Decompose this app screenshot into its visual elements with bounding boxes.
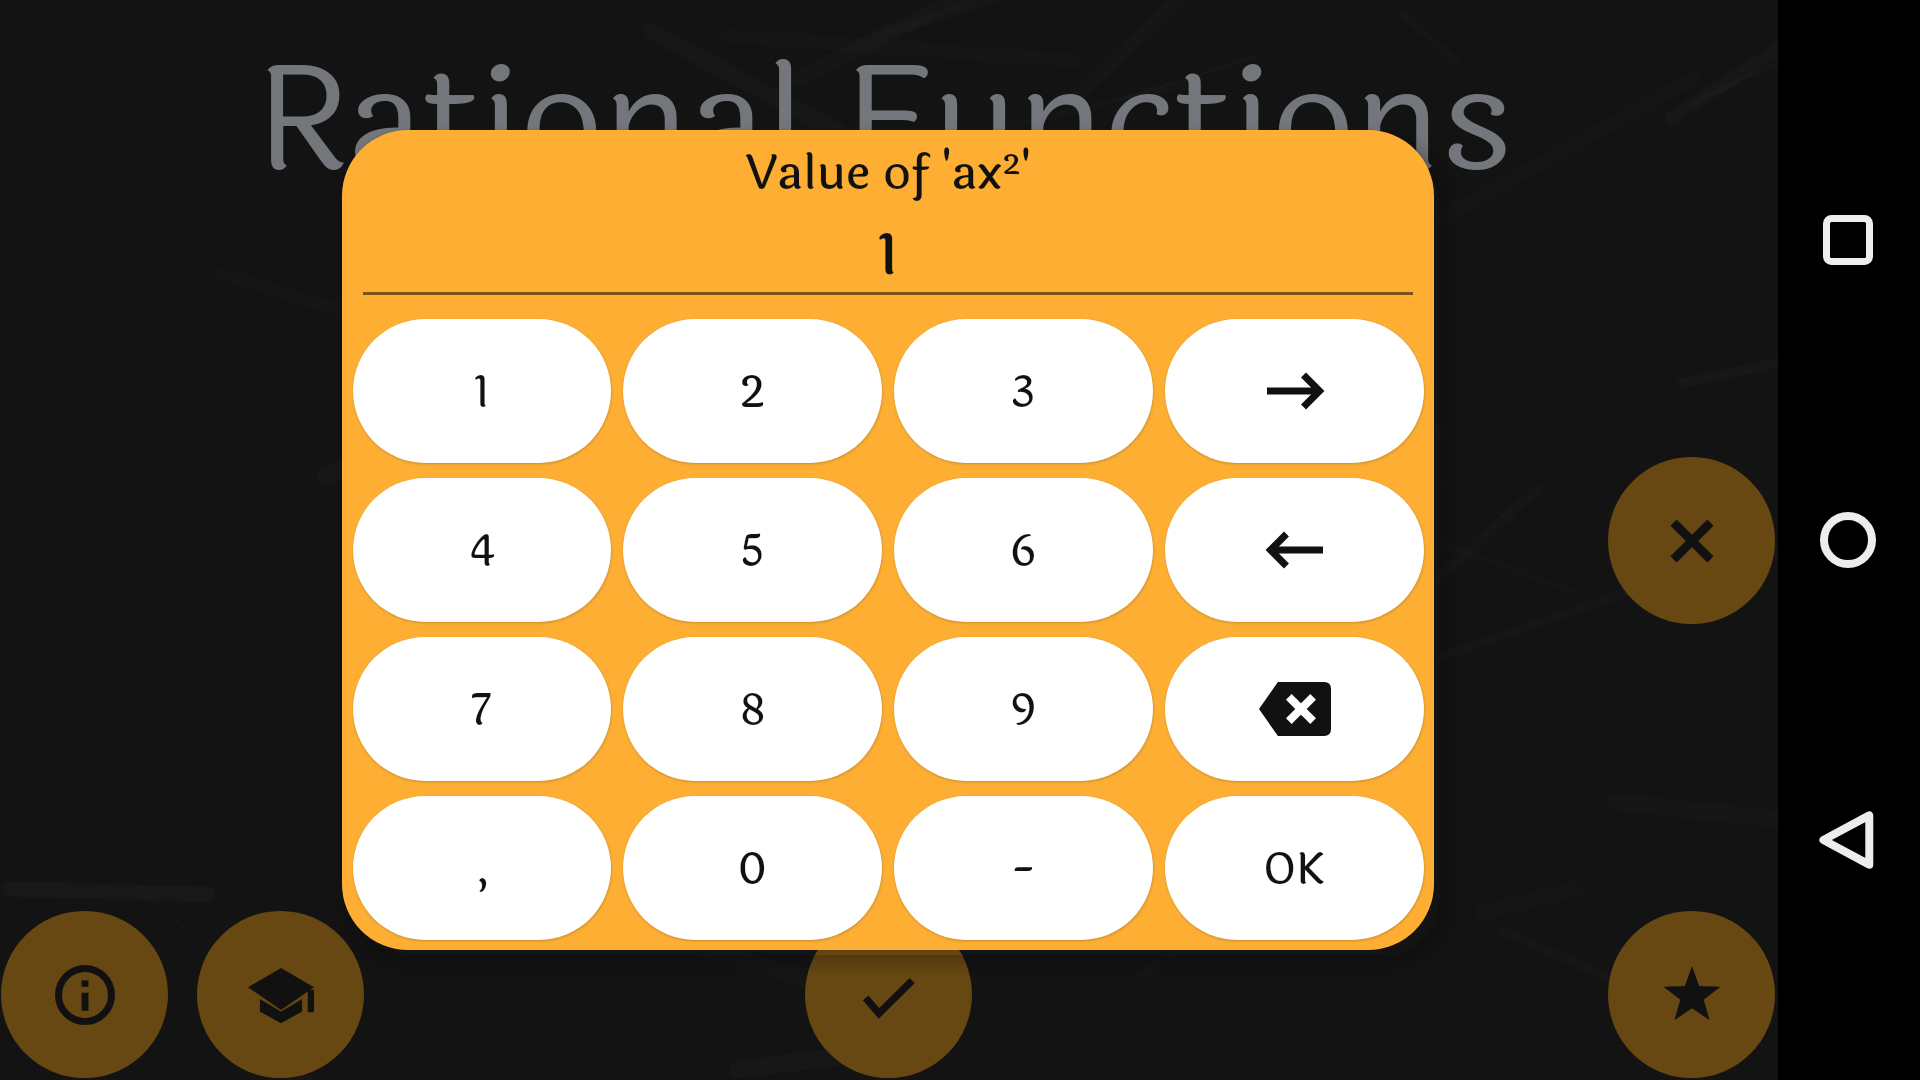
button[interactable]: Move left [1165,478,1424,622]
button[interactable]: 1 [353,319,611,463]
button[interactable]: 9 [894,637,1153,781]
button[interactable]: 0 [623,796,882,940]
staticText: 0 [738,837,767,904]
button[interactable]: Confirm [805,911,972,1078]
staticText: 9 [1011,678,1036,745]
staticText: 7 [471,678,493,745]
staticText: , [476,837,489,904]
button[interactable]: Favourite [1608,911,1775,1078]
staticText: 2 [740,360,765,427]
staticText: Rational Functions [256,10,1514,235]
button[interactable]: 5 [623,478,882,622]
button[interactable]: 7 [353,637,611,781]
button[interactable]: 4 [353,478,611,622]
staticText: 4 [469,519,496,586]
button[interactable]: Tutorial [197,911,364,1078]
staticText: 6 [1010,519,1037,586]
button[interactable]: Recent apps [1812,204,1884,276]
button[interactable]: , [353,796,611,940]
button[interactable]: Back [1812,804,1884,876]
button[interactable]: Move right [1165,319,1424,463]
button[interactable]: Information [1,911,168,1078]
staticText: 3 [1011,360,1036,427]
button[interactable]: 6 [894,478,1153,622]
button[interactable]: Home [1812,504,1884,576]
staticText: 5 [740,519,765,586]
button[interactable]: 2 [623,319,882,463]
staticText: 8 [740,678,766,745]
button[interactable]: 8 [623,637,882,781]
button[interactable]: Backspace [1165,637,1424,781]
staticText: - [1012,837,1035,904]
button[interactable]: 3 [894,319,1153,463]
staticText: OK [1263,837,1326,904]
staticText: 1 [474,360,490,427]
button[interactable]: OK [1165,796,1424,940]
staticText: Value of 'ax²' [342,136,1434,210]
button[interactable]: - [894,796,1153,940]
button[interactable]: Close [1608,457,1775,624]
staticText: 1 [342,215,1434,299]
